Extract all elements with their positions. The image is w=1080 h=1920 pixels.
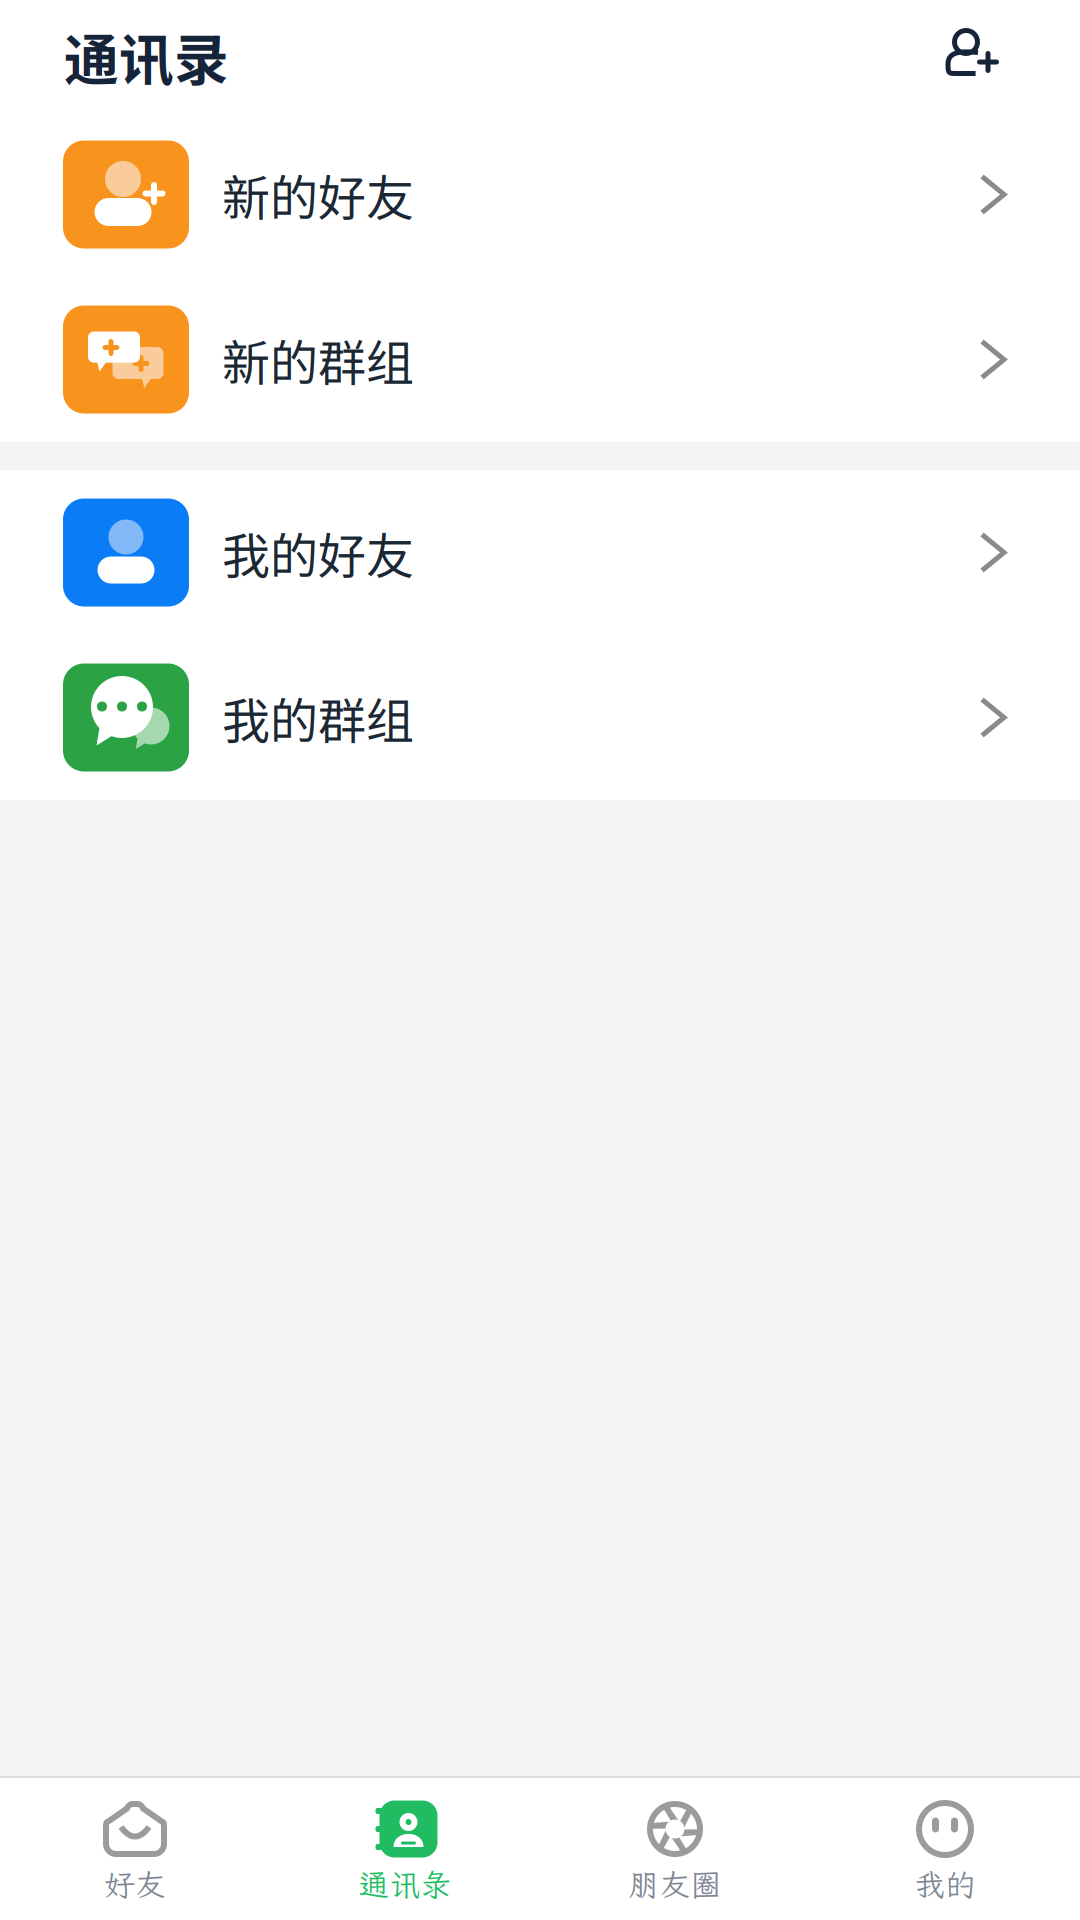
button[interactable]: 朋友圈 — [540, 1778, 810, 1920]
button[interactable]: 好友 — [0, 1778, 270, 1920]
staticText: 通讯录 — [64, 16, 229, 96]
button[interactable]: Add contact — [931, 16, 1011, 96]
staticText: 朋友圈 — [628, 1864, 721, 1904]
staticText: 我的好友 — [222, 518, 414, 587]
staticText: 新的好友 — [222, 160, 414, 229]
staticText: 好友 — [104, 1864, 166, 1904]
staticText: 我的 — [914, 1864, 976, 1904]
staticText: 通讯录 — [358, 1864, 451, 1904]
button[interactable]: 新的群组 — [0, 277, 1080, 442]
staticText: 我的群组 — [222, 683, 414, 752]
button[interactable]: 新的好友 — [0, 112, 1080, 277]
button[interactable]: 我的 — [810, 1778, 1080, 1920]
button[interactable]: 我的群组 — [0, 635, 1080, 800]
staticText: 新的群组 — [222, 325, 414, 394]
button[interactable]: 通讯录 — [270, 1778, 540, 1920]
button[interactable]: 我的好友 — [0, 470, 1080, 635]
